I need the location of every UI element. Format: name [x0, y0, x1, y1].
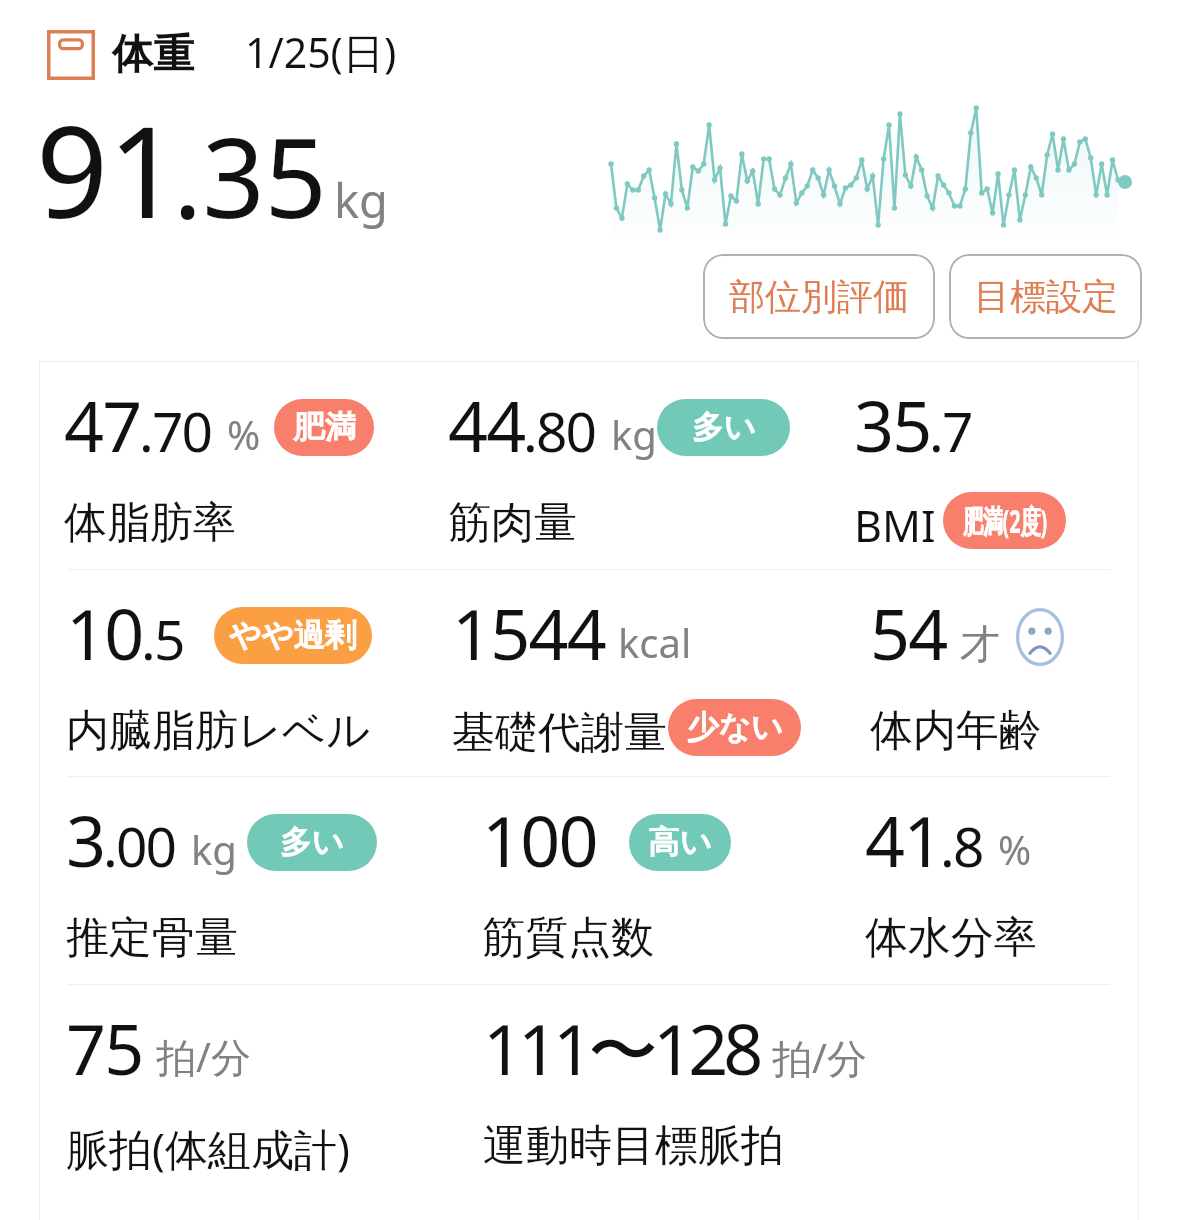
staticText: 基礎代謝量: [452, 706, 667, 760]
button[interactable]: 1544: [452, 569, 852, 777]
staticText: kg: [611, 407, 657, 461]
staticText: 目標設定: [974, 274, 1118, 319]
staticText: .8: [940, 808, 983, 883]
button[interactable]: 41: [865, 776, 1179, 984]
button[interactable]: 多い: [657, 399, 790, 456]
staticText: kcal: [618, 615, 692, 669]
staticText: 脈拍(体組成計): [66, 1119, 350, 1178]
button[interactable]: 54: [870, 569, 1179, 777]
button[interactable]: 部位別評価: [703, 254, 935, 339]
staticText: %: [227, 407, 261, 461]
staticText: 41: [865, 792, 942, 887]
staticText: 推定骨量: [66, 911, 238, 965]
staticText: 体脂肪率: [64, 496, 236, 550]
staticText: 運動時目標脈拍: [483, 1119, 784, 1173]
button[interactable]: 高い: [629, 814, 731, 871]
button[interactable]: 多い: [247, 814, 377, 871]
staticText: %: [998, 822, 1032, 876]
staticText: 体重: [112, 29, 194, 81]
staticText: 多い: [280, 823, 344, 863]
button[interactable]: 3: [66, 776, 466, 984]
staticText: kg: [334, 168, 389, 232]
staticText: 肥満: [293, 408, 356, 448]
staticText: BMI: [854, 496, 936, 555]
staticText: 75: [66, 1000, 143, 1095]
staticText: 内臓脂肪レベル: [66, 704, 371, 758]
staticText: 100: [482, 792, 597, 887]
staticText: 1/25(日): [245, 24, 397, 80]
staticText: 47: [64, 377, 141, 472]
staticText: .70: [139, 393, 212, 468]
staticText: .00: [103, 808, 176, 883]
staticText: 多い: [692, 408, 756, 448]
staticText: .35: [173, 101, 327, 249]
staticText: やや過剰: [229, 616, 357, 656]
button[interactable]: 75: [66, 984, 466, 1192]
staticText: 111〜128: [483, 1000, 759, 1096]
staticText: 3: [66, 792, 105, 887]
staticText: 高い: [648, 823, 712, 863]
staticText: 10: [66, 585, 143, 680]
button[interactable]: 目標設定: [949, 254, 1142, 339]
staticText: 拍/分: [156, 1029, 251, 1084]
staticText: 筋肉量: [448, 496, 577, 550]
staticText: 肥満(2度): [963, 499, 1047, 542]
button[interactable]: やや過剰: [214, 607, 372, 664]
button[interactable]: 44: [448, 361, 848, 569]
staticText: 35: [854, 377, 931, 472]
staticText: .7: [929, 393, 972, 468]
staticText: 体内年齢: [870, 704, 1042, 758]
staticText: 才: [960, 619, 1000, 669]
staticText: 筋質点数: [482, 911, 654, 965]
other: Weight scale: [47, 30, 95, 80]
staticText: 54: [870, 585, 947, 680]
button[interactable]: 10: [66, 569, 466, 777]
button[interactable]: 少ない: [668, 699, 801, 756]
button[interactable]: 47: [64, 361, 464, 569]
button[interactable]: 肥満: [274, 399, 374, 456]
staticText: 少ない: [687, 708, 783, 748]
button[interactable]: 35: [854, 361, 1154, 569]
button[interactable]: 肥満(2度): [943, 492, 1066, 549]
staticText: 44: [448, 377, 525, 472]
staticText: .5: [141, 601, 184, 676]
staticText: kg: [191, 822, 237, 876]
staticText: 91: [36, 83, 181, 255]
staticText: 部位別評価: [729, 274, 909, 319]
staticText: 1544: [452, 585, 605, 680]
button[interactable]: 100: [482, 776, 882, 984]
button[interactable]: 111〜128: [483, 984, 1083, 1192]
staticText: 拍/分: [772, 1030, 867, 1085]
staticText: .80: [523, 393, 596, 468]
staticText: 体水分率: [865, 911, 1037, 965]
